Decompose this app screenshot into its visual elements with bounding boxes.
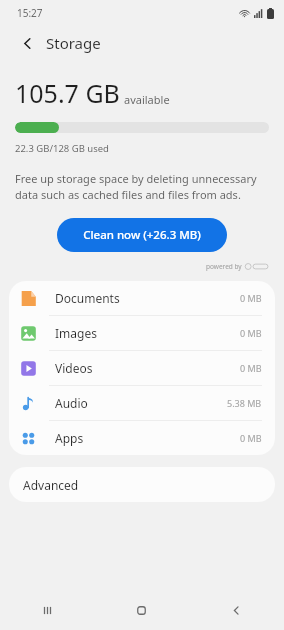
button[interactable]: Advanced: [9, 467, 275, 502]
button[interactable]: Back: [14, 30, 40, 56]
staticText: powered by: [206, 262, 242, 271]
button[interactable]: Documents: [9, 281, 275, 315]
staticText: 22.3 GB/128 GB used: [15, 142, 109, 155]
staticText: 105.7 GB: [15, 76, 120, 110]
staticText: Audio: [55, 395, 227, 411]
staticText: Videos: [55, 360, 240, 376]
staticText: 0 MB: [240, 292, 262, 304]
staticText: 15:27: [17, 6, 43, 20]
staticText: 0 MB: [240, 432, 262, 444]
staticText: Clean now (+26.3 MB): [83, 227, 201, 243]
staticText: Advanced: [23, 477, 79, 493]
button[interactable]: Apps: [9, 421, 275, 455]
staticText: Storage: [46, 33, 101, 53]
staticText: Documents: [55, 290, 240, 306]
button[interactable]: Videos: [9, 351, 275, 385]
button[interactable]: Clean now (+26.3 MB): [57, 218, 227, 252]
staticText: Free up storage space by deleting unnece…: [15, 171, 269, 203]
button[interactable]: Back: [189, 590, 284, 630]
button[interactable]: Home: [94, 590, 189, 630]
button[interactable]: Audio: [9, 386, 275, 420]
staticText: 0 MB: [240, 362, 262, 374]
button[interactable]: Images: [9, 316, 275, 350]
staticText: available: [124, 92, 170, 107]
staticText: 0 MB: [240, 327, 262, 339]
staticText: Apps: [55, 430, 240, 446]
staticText: Images: [55, 325, 240, 341]
button[interactable]: Recents: [0, 590, 94, 630]
staticText: 5.38 MB: [227, 397, 262, 409]
